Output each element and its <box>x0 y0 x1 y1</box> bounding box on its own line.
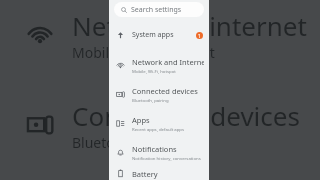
staticText: Bluetooth, pairing <box>72 133 192 152</box>
button[interactable]: Network and Internet <box>109 51 209 80</box>
staticText: Notifications <box>132 144 177 154</box>
button[interactable]: Connected devices <box>109 80 209 109</box>
staticText: Apps <box>132 115 150 125</box>
staticText: Mobile, Wi-Fi, hotspot <box>132 68 176 74</box>
staticText: Mobile, Wi-Fi, hotspot <box>72 43 215 62</box>
staticText: Notification history, conversations <box>132 155 201 161</box>
staticText: Bluetooth, pairing <box>132 97 169 103</box>
staticText: Connected devices <box>72 98 300 133</box>
other: 1 update available <box>196 32 203 39</box>
staticText: Battery <box>132 169 158 179</box>
button[interactable]: System apps updater <box>109 25 209 45</box>
button[interactable]: Battery <box>109 167 209 180</box>
button[interactable]: Apps <box>109 109 209 138</box>
staticText: Search settings <box>131 5 182 15</box>
button[interactable]: Notifications <box>109 138 209 167</box>
staticText: 1 <box>198 33 201 39</box>
staticText: Recent apps, default apps <box>132 126 185 132</box>
staticText: Connected devices <box>132 86 198 96</box>
staticText: Network and Internet <box>132 57 204 67</box>
button[interactable]: Search settings <box>114 2 204 17</box>
staticText: Network & internet <box>72 8 307 43</box>
staticText: System apps updater <box>132 30 196 40</box>
